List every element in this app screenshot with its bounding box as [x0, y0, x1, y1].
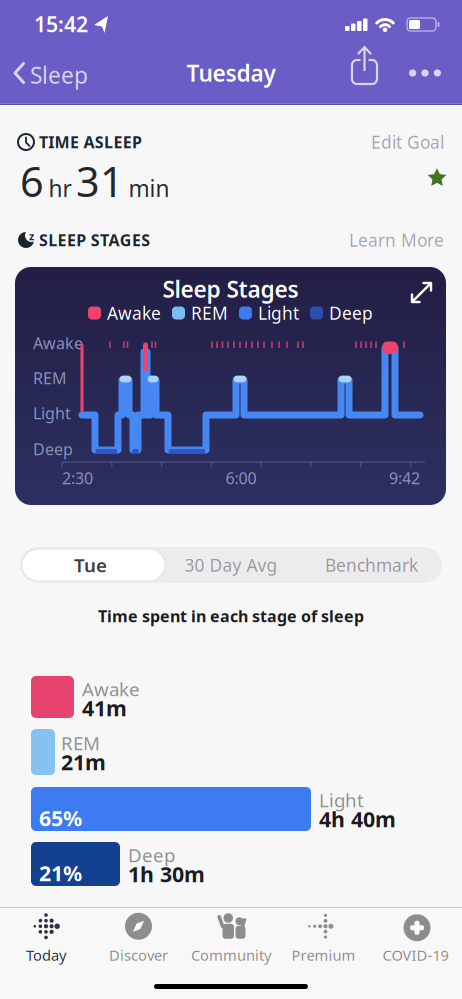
staticText: min — [128, 173, 169, 203]
staticText: Sleep Stages — [162, 274, 298, 304]
button[interactable]: Tue — [20, 547, 161, 583]
button[interactable]: Community — [187, 911, 275, 965]
staticText: REM — [33, 367, 67, 389]
staticText: COVID-19 — [382, 945, 448, 965]
staticText: 2:30 — [62, 467, 93, 489]
staticText: SLEEP STAGES — [39, 229, 150, 251]
staticText: 65% — [39, 804, 82, 832]
staticText: Tuesday — [186, 58, 275, 88]
staticText: TIME ASLEEP — [39, 131, 142, 153]
staticText: Awake — [107, 301, 161, 324]
staticText: Awake — [33, 332, 83, 354]
staticText: Community — [191, 945, 271, 965]
staticText: Deep — [329, 301, 373, 324]
staticText: 41m — [82, 694, 127, 722]
staticText: Discover — [109, 945, 168, 965]
staticText: Benchmark — [325, 553, 418, 576]
button[interactable]: Premium — [279, 911, 367, 965]
button[interactable]: Share — [349, 45, 380, 87]
staticText: Tue — [74, 553, 107, 577]
staticText: 21m — [61, 748, 106, 776]
staticText: 6 — [20, 154, 44, 208]
staticText: 4h 40m — [319, 805, 396, 833]
staticText: Time spent in each stage of sleep — [98, 605, 364, 627]
button[interactable]: Edit Goal — [354, 132, 444, 152]
staticText: REM — [61, 731, 100, 755]
staticText: Today — [26, 945, 66, 965]
staticText: Light — [33, 402, 71, 424]
staticText: Sleep — [30, 60, 88, 90]
staticText: hr — [48, 173, 71, 203]
staticText: Learn More — [349, 228, 444, 251]
staticText: 31 — [76, 154, 124, 208]
button[interactable]: Expand — [409, 280, 434, 305]
staticText: Deep — [128, 843, 175, 867]
staticText: 6:00 — [225, 467, 256, 489]
button[interactable]: More — [403, 57, 447, 89]
staticText: Light — [319, 788, 364, 812]
staticText: 21% — [39, 859, 82, 887]
staticText: REM — [191, 301, 228, 324]
button[interactable]: Learn More — [334, 230, 444, 250]
staticText: 15:42 — [34, 10, 88, 38]
staticText: z — [29, 229, 34, 243]
button[interactable]: 30 Day Avg — [161, 547, 301, 583]
staticText: Deep — [33, 438, 73, 460]
button[interactable]: COVID-19 — [371, 911, 459, 965]
button[interactable]: Today — [2, 911, 90, 965]
staticText: Premium — [291, 945, 355, 965]
staticText: 30 Day Avg — [184, 553, 277, 576]
staticText: 9:42 — [389, 467, 420, 489]
staticText: Awake — [82, 677, 140, 701]
staticText: Light — [258, 301, 299, 324]
staticText: Edit Goal — [371, 130, 444, 153]
button[interactable]: Benchmark — [301, 547, 442, 583]
staticText: 1h 30m — [128, 860, 205, 888]
button[interactable]: Discover — [94, 911, 182, 965]
button[interactable]: Sleep — [12, 60, 87, 86]
